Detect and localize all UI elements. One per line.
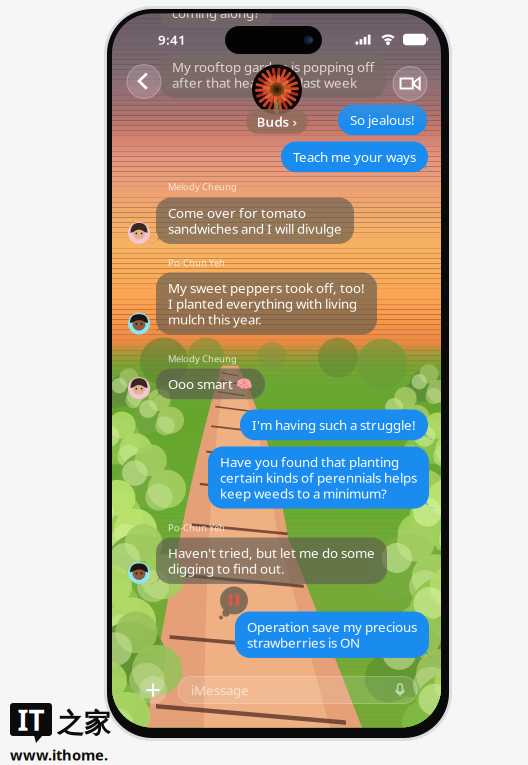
staticText: strawberries is ON	[247, 634, 360, 651]
staticText: iMessage	[191, 681, 249, 699]
button[interactable]: I'm having such a struggle!	[240, 409, 428, 440]
staticText: Melody Cheung	[168, 180, 237, 193]
staticText: 之家	[57, 707, 111, 740]
button[interactable]: So jealous!	[338, 104, 427, 135]
staticText: after that heat wave last week	[172, 74, 357, 91]
button[interactable]: Buds	[246, 109, 307, 134]
button[interactable]: My rooftop garden is popping off	[160, 51, 386, 98]
staticText: So jealous!	[350, 111, 415, 129]
staticText: Buds	[256, 113, 289, 130]
staticText: I planted everything with living	[168, 295, 357, 312]
staticText: Melody Cheung	[168, 352, 237, 365]
staticText: coming along?	[172, 4, 260, 22]
staticText: My sweet peppers took off, too!	[168, 279, 365, 297]
staticText: Po-Chun Yeh	[168, 521, 225, 534]
button[interactable]: coming along?	[160, 0, 272, 28]
staticText: Ooo smart 🧠	[168, 375, 253, 393]
staticText: My rooftop garden is popping off	[172, 58, 374, 76]
staticText: digging to find out.	[168, 560, 285, 577]
staticText: keep weeds to a minimum?	[220, 484, 387, 502]
button[interactable]: Back to conversations	[125, 62, 163, 100]
staticText: Haven't tried, but let me do some	[168, 544, 375, 562]
button[interactable]: Ooo smart 🧠	[156, 368, 265, 399]
staticText: certain kinds of perennials helps	[220, 469, 417, 486]
staticText: www.ithome.com	[10, 745, 108, 765]
staticText: Have you found that planting	[220, 453, 399, 471]
staticText: Come over for tomato	[168, 204, 306, 222]
staticText: Operation save my precious	[247, 618, 417, 636]
staticText: 9:41	[158, 31, 186, 48]
button[interactable]: Add attachment	[136, 673, 170, 707]
staticText: sandwiches and I will divulge	[168, 220, 342, 237]
staticText: IT	[17, 701, 44, 739]
button[interactable]: Come over for tomato	[156, 197, 354, 244]
staticText: Teach me your ways	[293, 148, 416, 166]
button[interactable]: Start FaceTime video call	[391, 64, 429, 102]
button[interactable]: Haven't tried, but let me do some	[156, 537, 387, 584]
button[interactable]: Operation save my precious	[235, 611, 429, 658]
button[interactable]: iMessage text field	[178, 676, 417, 703]
staticText: Po-Chun Yeh	[168, 256, 225, 269]
staticText: ›	[292, 113, 297, 130]
button[interactable]: Teach me your ways	[281, 141, 428, 172]
button[interactable]: My sweet peppers took off, too!	[156, 272, 377, 335]
button[interactable]: Have you found that planting	[208, 446, 429, 509]
staticText: mulch this year.	[168, 310, 262, 328]
staticText: I'm having such a struggle!	[252, 416, 416, 434]
